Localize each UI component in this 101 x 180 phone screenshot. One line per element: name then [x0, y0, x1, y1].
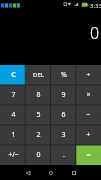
staticText: .: [63, 150, 65, 160]
button[interactable]: −: [76, 105, 101, 125]
button[interactable]: 3: [51, 125, 76, 145]
staticText: 9: [61, 90, 66, 100]
staticText: =: [86, 150, 91, 160]
button[interactable]: Recents: [62, 165, 85, 180]
staticText: 0: [36, 150, 41, 160]
staticText: 0: [90, 22, 100, 44]
staticText: −: [86, 110, 91, 120]
staticText: +: [86, 130, 91, 140]
staticText: 3:33: [90, 2, 101, 10]
staticText: 7: [11, 90, 16, 100]
button[interactable]: 6: [51, 105, 76, 125]
staticText: 8: [36, 90, 41, 100]
button[interactable]: C: [0, 65, 26, 85]
staticText: +/−: [8, 150, 19, 160]
button[interactable]: ×: [76, 85, 101, 105]
staticText: 5: [36, 110, 41, 120]
button[interactable]: =: [76, 145, 101, 165]
button[interactable]: 1: [0, 125, 26, 145]
button[interactable]: 9: [51, 85, 76, 105]
staticText: 6: [61, 110, 66, 120]
staticText: DEL: [33, 71, 44, 79]
staticText: ×: [86, 90, 91, 100]
staticText: %: [61, 70, 67, 80]
button[interactable]: 8: [26, 85, 51, 105]
staticText: ÷: [86, 70, 91, 80]
button[interactable]: +: [76, 125, 101, 145]
button[interactable]: .: [51, 145, 76, 165]
button[interactable]: 2: [26, 125, 51, 145]
button[interactable]: 5: [26, 105, 51, 125]
button[interactable]: %: [51, 65, 76, 85]
staticText: 4: [11, 110, 16, 120]
button[interactable]: +/−: [0, 145, 26, 165]
staticText: 3: [61, 130, 66, 140]
button[interactable]: ÷: [76, 65, 101, 85]
button[interactable]: Back: [16, 165, 39, 180]
button[interactable]: 7: [0, 85, 26, 105]
button[interactable]: Home: [39, 165, 62, 180]
staticText: 1: [11, 130, 16, 140]
button[interactable]: DEL: [26, 65, 51, 85]
button[interactable]: 4: [0, 105, 26, 125]
button[interactable]: 0: [26, 145, 51, 165]
staticText: C: [11, 70, 16, 80]
staticText: 2: [36, 130, 41, 140]
